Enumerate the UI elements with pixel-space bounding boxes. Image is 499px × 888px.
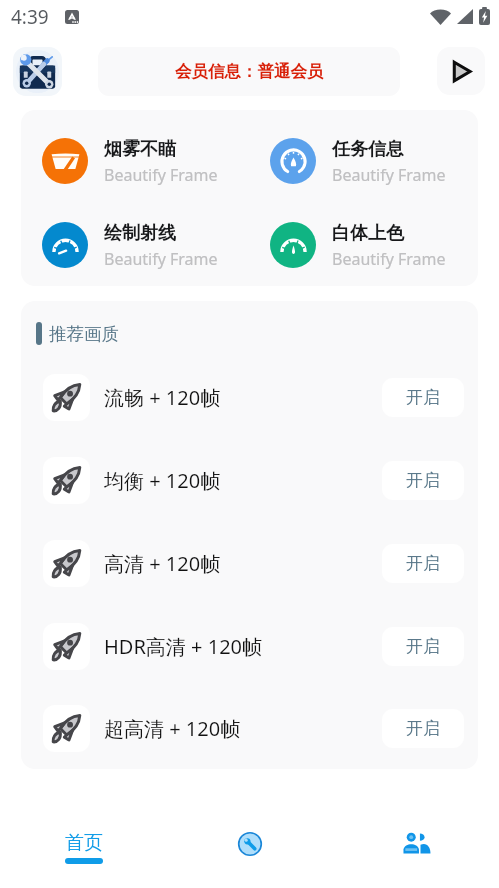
button[interactable]: 绘制射线 bbox=[21, 203, 249, 286]
staticText: 流畅 + 120帧 bbox=[104, 384, 221, 411]
staticText: Beautify Frame bbox=[332, 164, 446, 186]
staticText: 会员信息：普通会员 bbox=[175, 61, 324, 82]
button[interactable]: 开启 bbox=[382, 709, 464, 748]
button[interactable]: 烟雾不瞄 bbox=[21, 118, 249, 203]
button[interactable]: 超高清 + 120帧 bbox=[21, 688, 478, 769]
staticText: 开启 bbox=[406, 553, 440, 574]
button[interactable]: 开启 bbox=[382, 461, 464, 500]
button[interactable]: HDR高清 + 120帧 bbox=[21, 605, 478, 688]
button[interactable]: 开启 bbox=[382, 544, 464, 583]
button[interactable]: App icon bbox=[13, 47, 62, 96]
staticText: HDR高清 + 120帧 bbox=[104, 633, 263, 660]
button[interactable]: Community bbox=[333, 818, 499, 888]
button[interactable]: 均衡 + 120帧 bbox=[21, 439, 478, 522]
staticText: 开启 bbox=[406, 387, 440, 408]
staticText: 均衡 + 120帧 bbox=[104, 467, 221, 494]
button[interactable]: 开启 bbox=[382, 627, 464, 666]
staticText: 超高清 + 120帧 bbox=[104, 715, 241, 742]
button[interactable]: 会员信息：普通会员 bbox=[98, 47, 400, 96]
button[interactable]: 任务信息 bbox=[249, 118, 478, 203]
staticText: 4:39 bbox=[11, 4, 49, 30]
button[interactable]: 流畅 + 120帧 bbox=[21, 356, 478, 439]
staticText: Beautify Frame bbox=[104, 164, 218, 186]
staticText: 高清 + 120帧 bbox=[104, 550, 221, 577]
staticText: 白体上色 bbox=[332, 222, 404, 245]
button[interactable]: 高清 + 120帧 bbox=[21, 522, 478, 605]
staticText: 开启 bbox=[406, 636, 440, 657]
staticText: Beautify Frame bbox=[104, 248, 218, 270]
staticText: 首页 bbox=[65, 831, 103, 855]
staticText: 开启 bbox=[406, 470, 440, 491]
staticText: 推荐画质 bbox=[49, 323, 119, 345]
button[interactable]: Tools bbox=[167, 818, 333, 888]
staticText: 开启 bbox=[406, 718, 440, 739]
staticText: 任务信息 bbox=[332, 138, 404, 161]
staticText: 绘制射线 bbox=[104, 222, 176, 245]
staticText: Beautify Frame bbox=[332, 248, 446, 270]
staticText: 烟雾不瞄 bbox=[104, 138, 176, 161]
button[interactable]: 白体上色 bbox=[249, 203, 478, 286]
button[interactable]: Play bbox=[437, 47, 485, 95]
button[interactable]: 首页 bbox=[0, 818, 167, 888]
button[interactable]: 开启 bbox=[382, 378, 464, 417]
